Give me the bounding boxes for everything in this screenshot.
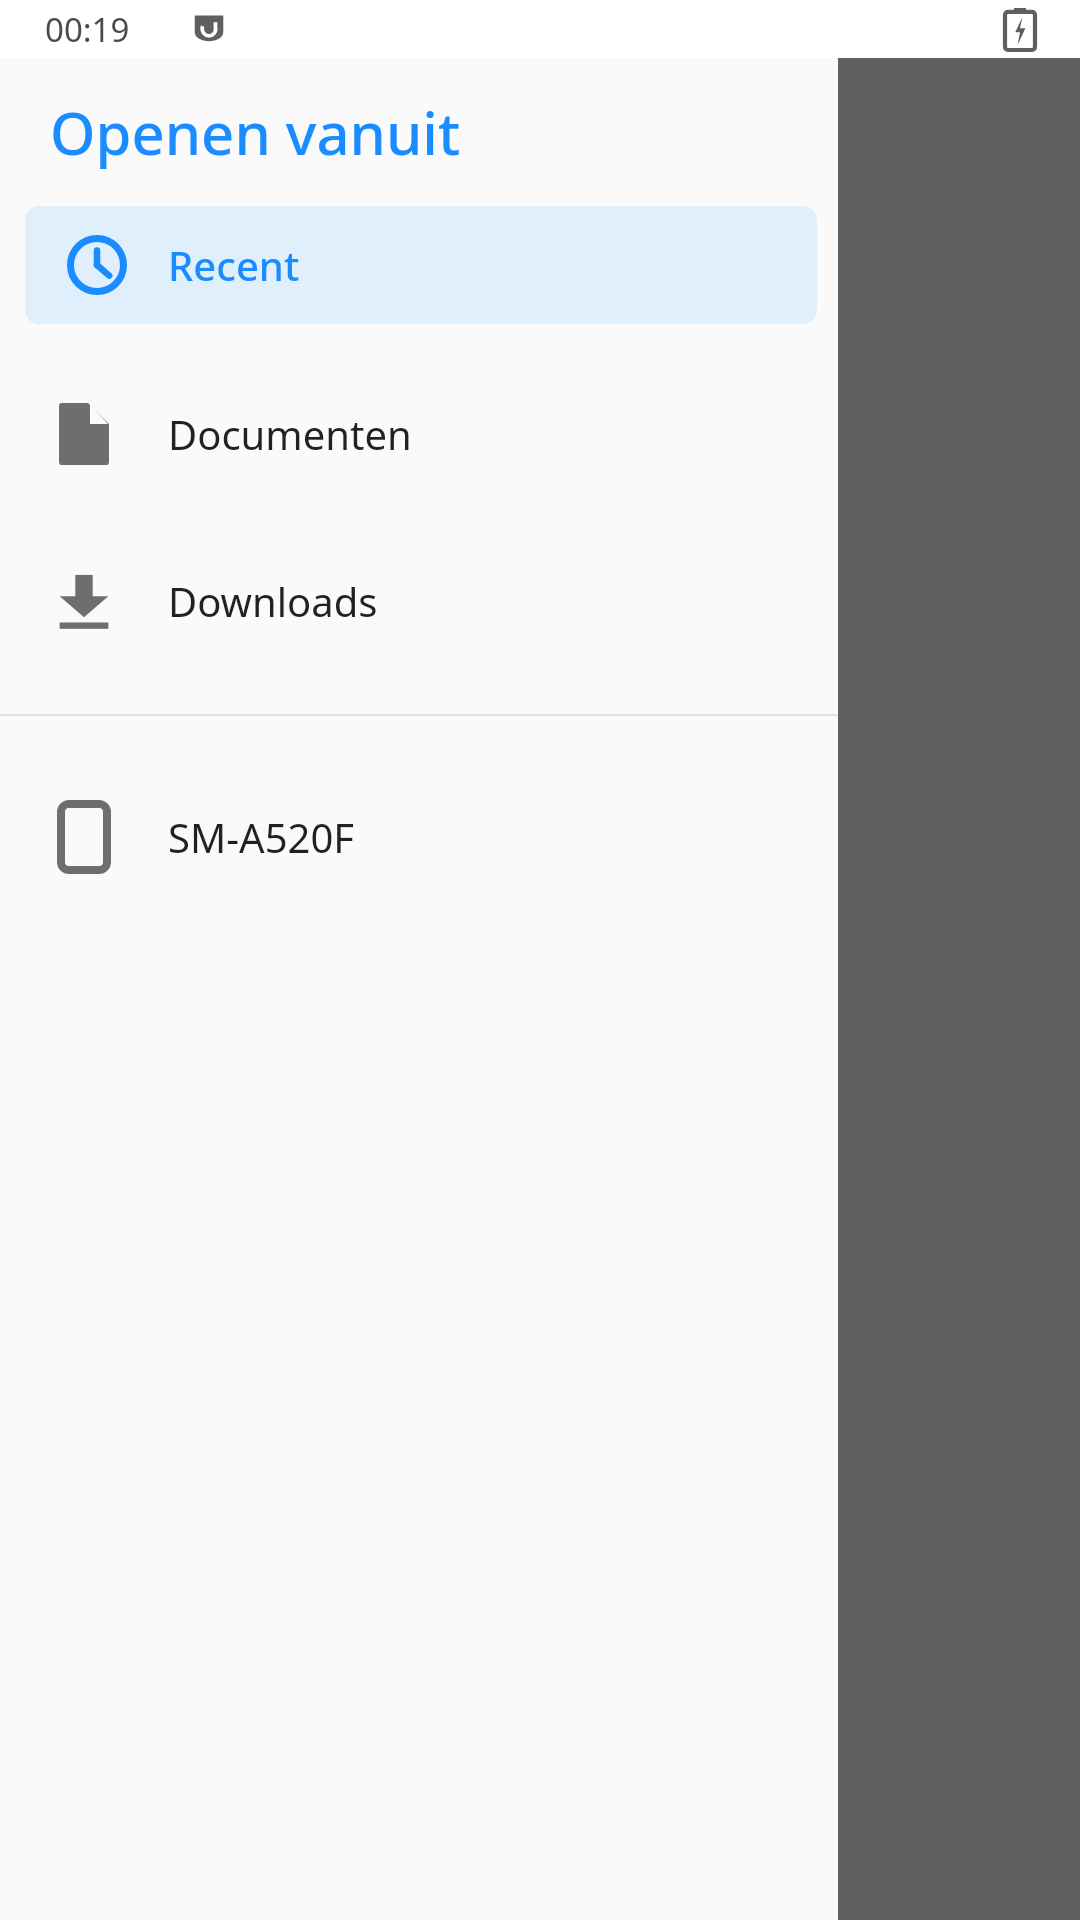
button[interactable] <box>0 58 1080 1920</box>
staticText: Documenten <box>168 407 412 461</box>
staticText: 00:19 <box>45 7 130 52</box>
button[interactable]: SM-A520F <box>0 778 838 896</box>
staticText: Downloads <box>168 574 378 628</box>
button[interactable]: Documenten <box>0 375 838 493</box>
staticText: Recent <box>168 238 300 292</box>
button[interactable]: Downloads <box>0 542 838 660</box>
staticText: SM-A520F <box>168 810 355 864</box>
staticText: Openen vanuit <box>50 93 461 172</box>
button[interactable]: Recent <box>25 206 817 324</box>
